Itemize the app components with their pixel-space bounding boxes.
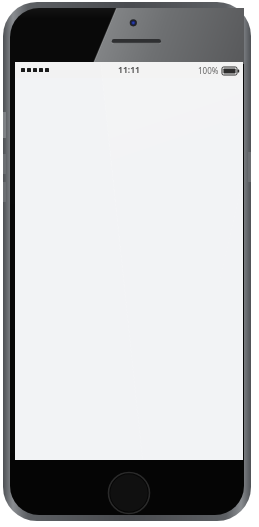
button[interactable]: Signal strength bbox=[20, 66, 52, 74]
button[interactable]: Home bbox=[107, 471, 151, 515]
staticText: 100% bbox=[198, 65, 219, 76]
staticText: 11:11 bbox=[118, 64, 140, 76]
button[interactable]: Battery 100 percent bbox=[198, 65, 239, 76]
